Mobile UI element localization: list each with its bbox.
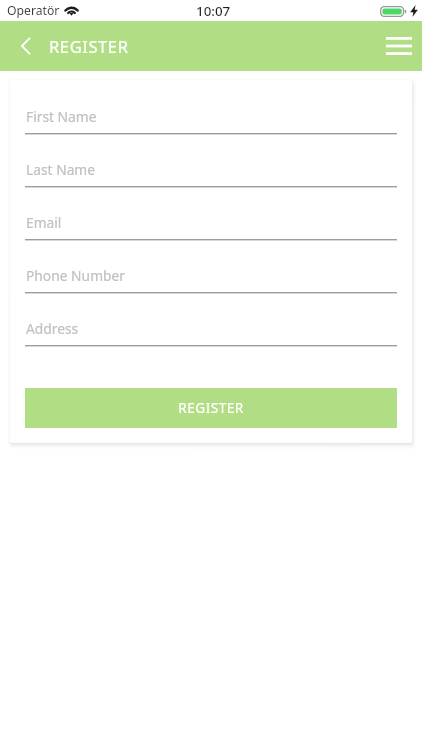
staticText: First Name — [26, 107, 97, 126]
staticText: Last Name — [26, 160, 96, 179]
button[interactable]: Email — [25, 205, 397, 241]
staticText: Email — [26, 213, 62, 232]
button[interactable]: Address — [25, 311, 397, 347]
staticText: Operatör — [7, 2, 60, 19]
staticText: REGISTER — [49, 35, 129, 57]
staticText: Address — [26, 319, 79, 338]
button[interactable]: REGISTER — [25, 388, 397, 428]
staticText: Phone Number — [26, 266, 125, 285]
button[interactable]: Phone Number — [25, 258, 397, 294]
staticText: REGISTER — [178, 398, 244, 417]
button[interactable]: Menu — [376, 21, 422, 71]
button[interactable]: Last Name — [25, 152, 397, 188]
staticText: 10:07 — [196, 2, 231, 20]
button[interactable]: First Name — [25, 99, 397, 135]
button[interactable]: Back — [0, 21, 52, 71]
